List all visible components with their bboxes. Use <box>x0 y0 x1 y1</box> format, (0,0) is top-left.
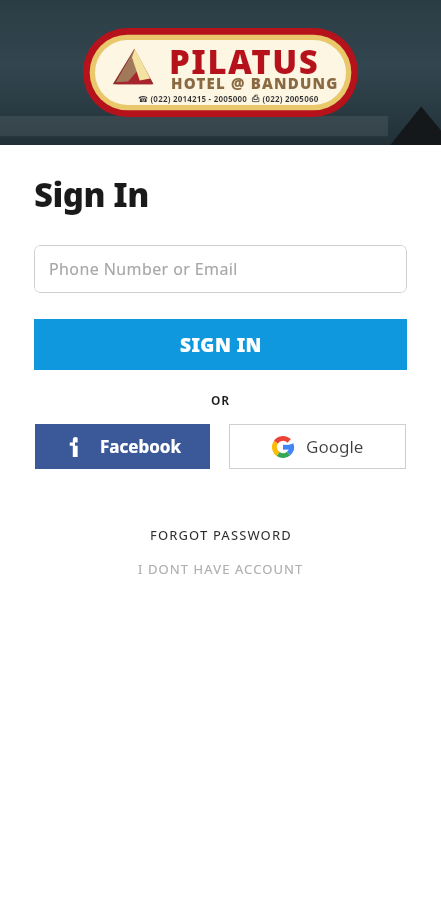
staticText: SIGN IN <box>180 332 262 358</box>
button[interactable]: I DONT HAVE ACCOUNT <box>0 560 441 578</box>
staticText: ☎ (022) 2014215 - 2005000 ⎙ (022) 200506… <box>138 90 319 106</box>
staticText: I DONT HAVE ACCOUNT <box>138 560 304 578</box>
button[interactable]: Facebook <box>35 424 210 469</box>
staticText: HOTEL @ BANDUNG <box>171 73 339 93</box>
button[interactable]: Google <box>229 424 406 469</box>
staticText: Sign In <box>34 172 149 217</box>
staticText: Phone Number or Email <box>49 258 238 280</box>
button[interactable]: FORGOT PASSWORD <box>0 526 441 544</box>
staticText: Google <box>306 435 364 458</box>
staticText: FORGOT PASSWORD <box>150 526 292 544</box>
button[interactable]: SIGN IN <box>34 319 407 370</box>
staticText: PILATUS <box>169 39 320 84</box>
button[interactable]: Phone Number or Email <box>34 245 407 293</box>
staticText: Facebook <box>100 435 181 458</box>
staticText: OR <box>0 392 441 408</box>
